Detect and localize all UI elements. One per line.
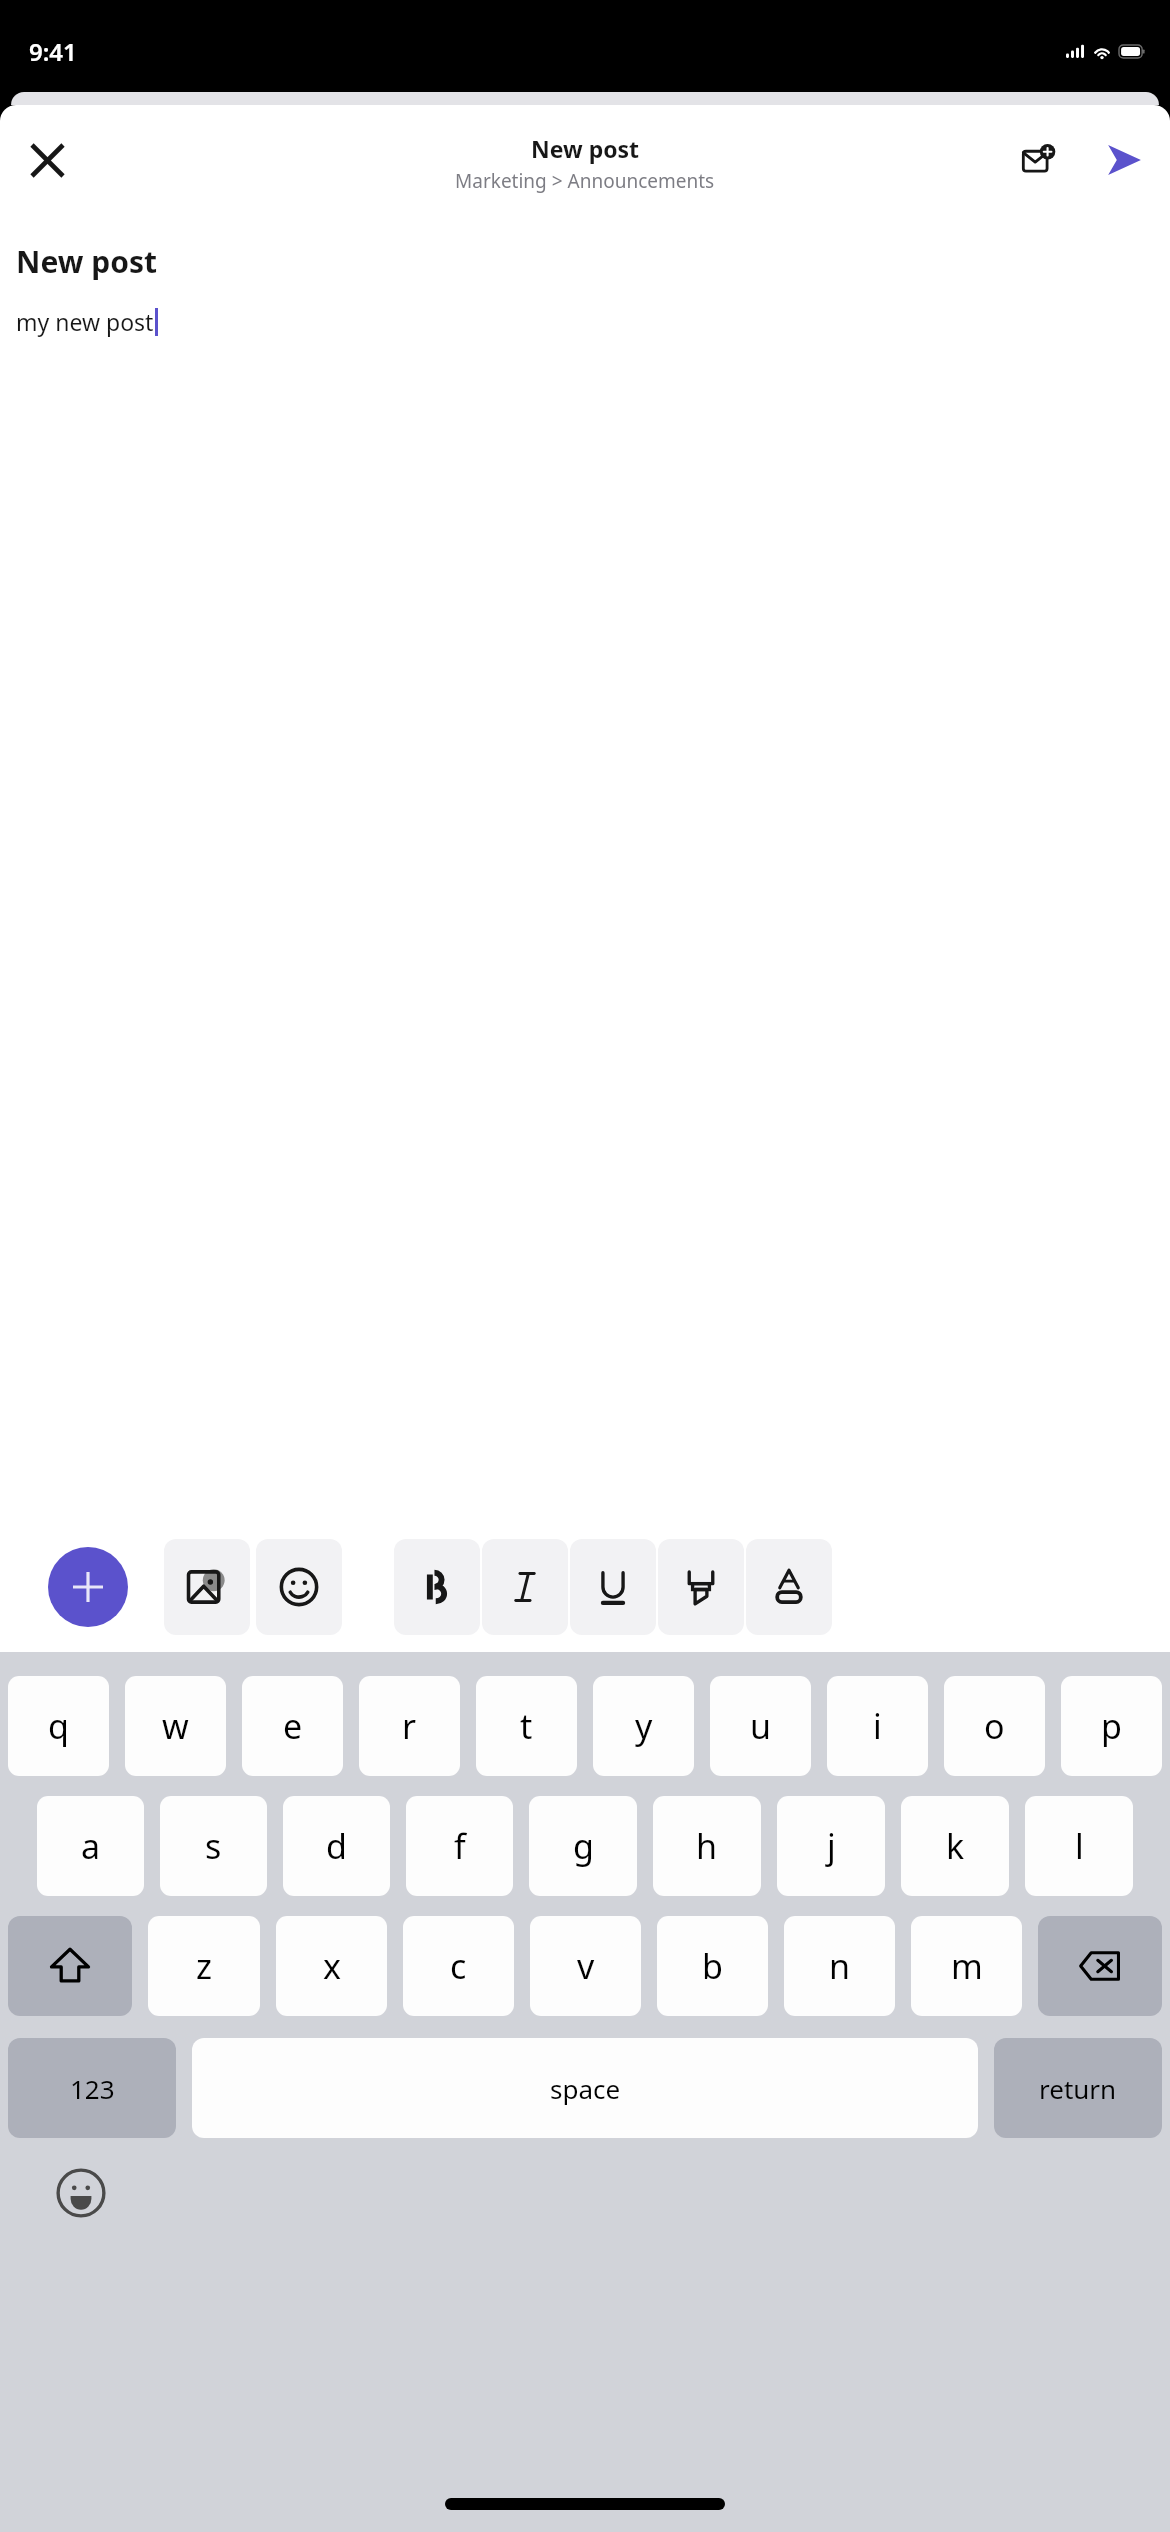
button[interactable]: Add: [48, 1547, 128, 1627]
staticText: x: [323, 1943, 341, 1989]
button[interactable]: Bold: [394, 1539, 480, 1635]
button[interactable]: q: [8, 1676, 109, 1776]
button[interactable]: Underline: [570, 1539, 656, 1635]
button[interactable]: h: [653, 1796, 761, 1896]
button[interactable]: Close: [14, 127, 80, 193]
button[interactable]: l: [1025, 1796, 1133, 1896]
staticText: r: [402, 1703, 417, 1749]
button[interactable]: v: [530, 1916, 641, 2016]
staticText: m: [951, 1943, 983, 1989]
button[interactable]: u: [710, 1676, 811, 1776]
staticText: return: [1039, 2071, 1117, 2106]
staticText: e: [283, 1703, 303, 1749]
button[interactable]: Insert emoji: [256, 1539, 342, 1635]
button[interactable]: Highlight: [658, 1539, 744, 1635]
button[interactable]: return: [994, 2038, 1162, 2138]
button[interactable]: b: [657, 1916, 768, 2016]
button[interactable]: f: [406, 1796, 513, 1896]
staticText: y: [635, 1703, 653, 1749]
button[interactable]: Backspace: [1038, 1916, 1162, 2016]
staticText: Marketing > Announcements: [455, 168, 715, 194]
button[interactable]: o: [944, 1676, 1045, 1776]
button[interactable]: s: [160, 1796, 267, 1896]
staticText: 9:41: [29, 35, 77, 68]
button[interactable]: space: [192, 2038, 978, 2138]
staticText: a: [81, 1823, 101, 1869]
button[interactable]: t: [476, 1676, 577, 1776]
staticText: f: [454, 1823, 466, 1869]
staticText: q: [48, 1703, 69, 1749]
staticText: j: [827, 1823, 836, 1869]
button[interactable]: a: [37, 1796, 144, 1896]
button[interactable]: j: [777, 1796, 885, 1896]
button[interactable]: Save as draft: [1006, 128, 1070, 192]
button[interactable]: Insert image: [164, 1539, 250, 1635]
staticText: 123: [70, 2071, 115, 2106]
staticText: s: [205, 1823, 222, 1869]
button[interactable]: Italic: [482, 1539, 568, 1635]
button[interactable]: p: [1061, 1676, 1162, 1776]
staticText: g: [573, 1823, 594, 1869]
staticText: v: [577, 1943, 595, 1989]
staticText: d: [326, 1823, 347, 1869]
button[interactable]: g: [529, 1796, 637, 1896]
button[interactable]: k: [901, 1796, 1009, 1896]
staticText: b: [702, 1943, 723, 1989]
staticText: h: [696, 1823, 718, 1869]
staticText: my new post: [16, 306, 154, 337]
button[interactable]: x: [276, 1916, 387, 2016]
button[interactable]: 123: [8, 2038, 176, 2138]
staticText: w: [162, 1703, 189, 1749]
button[interactable]: i: [827, 1676, 928, 1776]
button[interactable]: r: [359, 1676, 460, 1776]
staticText: l: [1075, 1823, 1084, 1869]
staticText: p: [1101, 1703, 1122, 1749]
staticText: New post: [531, 133, 640, 164]
staticText: k: [946, 1823, 965, 1869]
button[interactable]: y: [593, 1676, 694, 1776]
button[interactable]: Text color: [746, 1539, 832, 1635]
staticText: space: [550, 2071, 621, 2106]
staticText: i: [873, 1703, 882, 1749]
button[interactable]: e: [242, 1676, 343, 1776]
button[interactable]: c: [403, 1916, 514, 2016]
button[interactable]: n: [784, 1916, 895, 2016]
button[interactable]: z: [148, 1916, 260, 2016]
button[interactable]: w: [125, 1676, 226, 1776]
staticText: u: [750, 1703, 772, 1749]
button[interactable]: Shift: [8, 1916, 132, 2016]
button[interactable]: Send: [1092, 128, 1156, 192]
button[interactable]: m: [911, 1916, 1022, 2016]
staticText: c: [450, 1943, 467, 1989]
staticText: o: [984, 1703, 1005, 1749]
staticText: New post: [16, 241, 157, 282]
button[interactable]: d: [283, 1796, 390, 1896]
staticText: z: [196, 1943, 212, 1989]
staticText: n: [829, 1943, 851, 1989]
staticText: t: [520, 1703, 533, 1749]
button[interactable]: Emoji keyboard: [52, 2164, 110, 2222]
